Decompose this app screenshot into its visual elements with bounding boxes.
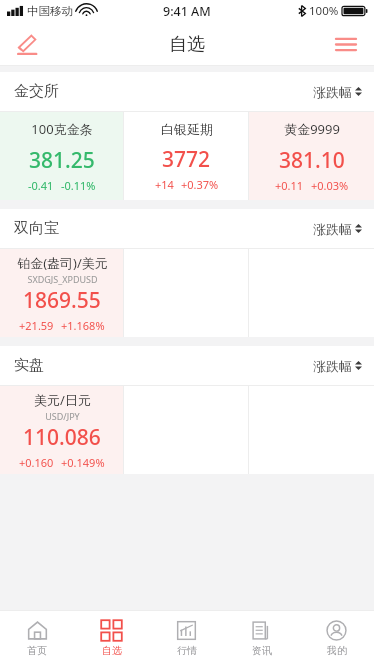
staticText: 涨跌幅: [313, 221, 352, 237]
staticText: 首页: [27, 644, 47, 657]
staticText: SXDGJS_XPDUSD: [27, 273, 98, 285]
staticText: 美元/日元: [34, 391, 91, 409]
staticText: 涨跌幅: [313, 84, 352, 100]
button[interactable]: 自选: [74, 611, 149, 666]
staticText: 黄金9999: [284, 120, 340, 138]
button[interactable]: 行情: [149, 611, 224, 666]
staticText: 381.25: [29, 146, 95, 175]
button[interactable]: 金交所: [0, 72, 374, 111]
button[interactable]: 白银延期: [124, 112, 249, 200]
staticText: 我的: [327, 644, 347, 657]
staticText: 1869.55: [23, 286, 101, 315]
button[interactable]: 双向宝: [0, 209, 374, 248]
staticText: 100%: [309, 3, 339, 19]
staticText: 9:41 AM: [163, 3, 211, 20]
staticText: -0.41: [28, 178, 54, 193]
button[interactable]: Edit: [8, 25, 46, 63]
staticText: 中国移动: [27, 4, 73, 18]
staticText: 381.10: [279, 146, 345, 175]
staticText: 资讯: [252, 644, 272, 657]
button[interactable]: Menu: [328, 26, 364, 62]
staticText: USD/JPY: [45, 410, 80, 422]
staticText: 110.086: [23, 423, 101, 452]
button[interactable]: 首页: [0, 611, 74, 666]
staticText: -0.11%: [61, 178, 96, 193]
staticText: +0.160: [19, 455, 54, 470]
button[interactable]: 资讯: [224, 611, 299, 666]
button[interactable]: 实盘: [0, 346, 374, 385]
staticText: 金交所: [14, 82, 59, 101]
staticText: 实盘: [14, 356, 44, 375]
button[interactable]: 铂金(盎司)/美元: [0, 249, 124, 337]
staticText: 铂金(盎司)/美元: [17, 254, 108, 272]
button[interactable]: 黄金9999: [249, 112, 374, 200]
staticText: 3772: [162, 145, 211, 174]
staticText: +0.03%: [311, 178, 349, 193]
staticText: 双向宝: [14, 219, 59, 238]
staticText: 行情: [177, 644, 197, 657]
staticText: 涨跌幅: [313, 358, 352, 374]
staticText: +0.149%: [61, 455, 105, 470]
staticText: +21.59: [19, 318, 54, 333]
staticText: +0.37%: [181, 177, 219, 192]
staticText: 100克金条: [31, 120, 93, 138]
button[interactable]: 我的: [299, 611, 374, 666]
button[interactable]: 100克金条: [0, 112, 124, 200]
staticText: +0.11: [275, 178, 304, 193]
staticText: 白银延期: [161, 121, 213, 137]
staticText: +14: [155, 177, 174, 192]
staticText: 自选: [102, 644, 122, 657]
staticText: +1.168%: [61, 318, 105, 333]
button[interactable]: 美元/日元: [0, 386, 124, 474]
staticText: 自选: [169, 33, 205, 56]
